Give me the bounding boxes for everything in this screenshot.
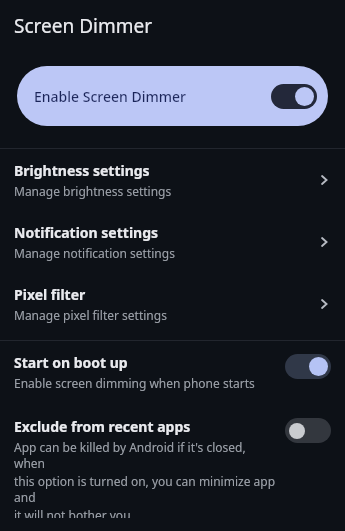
button[interactable]: Notification settings: [0, 211, 345, 273]
button[interactable]: Toggle: [285, 418, 331, 443]
staticText: Brightness settings: [14, 161, 150, 180]
staticText: this option is turned on, you can minimi…: [14, 473, 277, 506]
button[interactable]: Brightness settings: [0, 149, 345, 211]
staticText: Enable Screen Dimmer: [34, 87, 186, 106]
button[interactable]: Enable Screen Dimmer: [17, 66, 328, 126]
staticText: Start on boot up: [14, 353, 128, 372]
button[interactable]: Toggle: [285, 354, 331, 379]
staticText: Manage notification settings: [14, 245, 175, 261]
button[interactable]: Enable Screen Dimmer: [271, 84, 317, 109]
other: Open: [317, 297, 331, 311]
staticText: App can be killed by Android if it's clo…: [14, 439, 277, 472]
button[interactable]: Exclude from recent apps: [0, 404, 345, 531]
staticText: Notification settings: [14, 223, 159, 242]
staticText: Manage pixel filter settings: [14, 307, 167, 323]
button[interactable]: Pixel filter: [0, 273, 345, 335]
other: Open: [317, 173, 331, 187]
staticText: Manage brightness settings: [14, 183, 172, 199]
staticText: Screen Dimmer: [14, 13, 152, 39]
other: Open: [317, 235, 331, 249]
staticText: it will not bother you: [14, 507, 131, 518]
button[interactable]: Start on boot up: [0, 341, 345, 404]
staticText: Pixel filter: [14, 285, 86, 304]
staticText: Exclude from recent apps: [14, 417, 191, 436]
staticText: Enable screen dimming when phone starts: [14, 375, 255, 391]
